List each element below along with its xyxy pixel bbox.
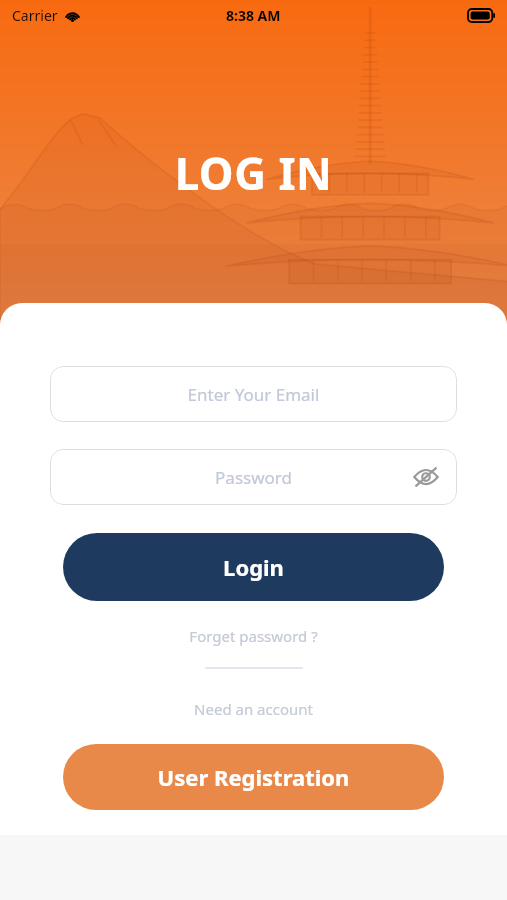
button[interactable]: User Registration <box>63 744 444 810</box>
staticText: Password <box>50 466 457 489</box>
staticText: Enter Your Email <box>50 383 457 406</box>
staticText: LOG IN <box>0 143 507 203</box>
staticText: Need an account <box>120 699 387 719</box>
staticText: Forget password ? <box>120 626 387 646</box>
staticText: Carrier <box>12 6 58 25</box>
button[interactable]: Need an account <box>120 696 387 722</box>
staticText: 8:38 AM <box>226 6 281 25</box>
button[interactable]: Login <box>63 533 444 601</box>
button[interactable]: Forget password ? <box>120 623 387 649</box>
button[interactable]: Password <box>50 449 457 505</box>
button[interactable]: Show password <box>409 460 443 494</box>
button[interactable]: Enter Your Email <box>50 366 457 422</box>
staticText: User Registration <box>63 762 444 792</box>
staticText: Login <box>63 552 444 582</box>
